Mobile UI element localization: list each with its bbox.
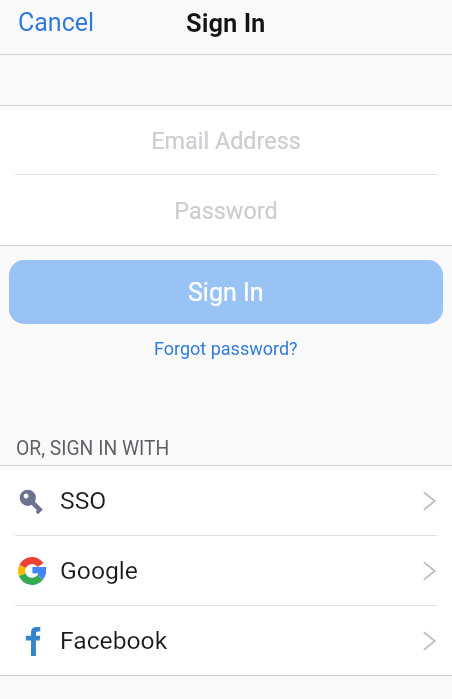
button[interactable]: Sign in with SSO	[0, 466, 452, 535]
staticText: OR, SIGN IN WITH	[16, 437, 170, 460]
staticText: Sign In	[186, 8, 266, 38]
staticText: SSO	[60, 486, 107, 515]
staticText: Sign In	[188, 278, 264, 307]
staticText: Email Address	[151, 127, 301, 154]
staticText: Google	[60, 556, 138, 585]
button[interactable]: Sign In	[9, 260, 443, 324]
button[interactable]: Sign in with Google	[0, 536, 452, 605]
staticText: Cancel	[18, 8, 95, 37]
staticText: Password	[174, 197, 278, 224]
button[interactable]: Cancel	[0, 0, 109, 45]
staticText: Facebook	[60, 626, 168, 655]
button[interactable]: Forgot password?	[148, 324, 304, 365]
button[interactable]: Sign in with Facebook	[0, 606, 452, 675]
button[interactable]: Password	[0, 175, 452, 245]
button[interactable]: Email Address	[0, 106, 452, 174]
